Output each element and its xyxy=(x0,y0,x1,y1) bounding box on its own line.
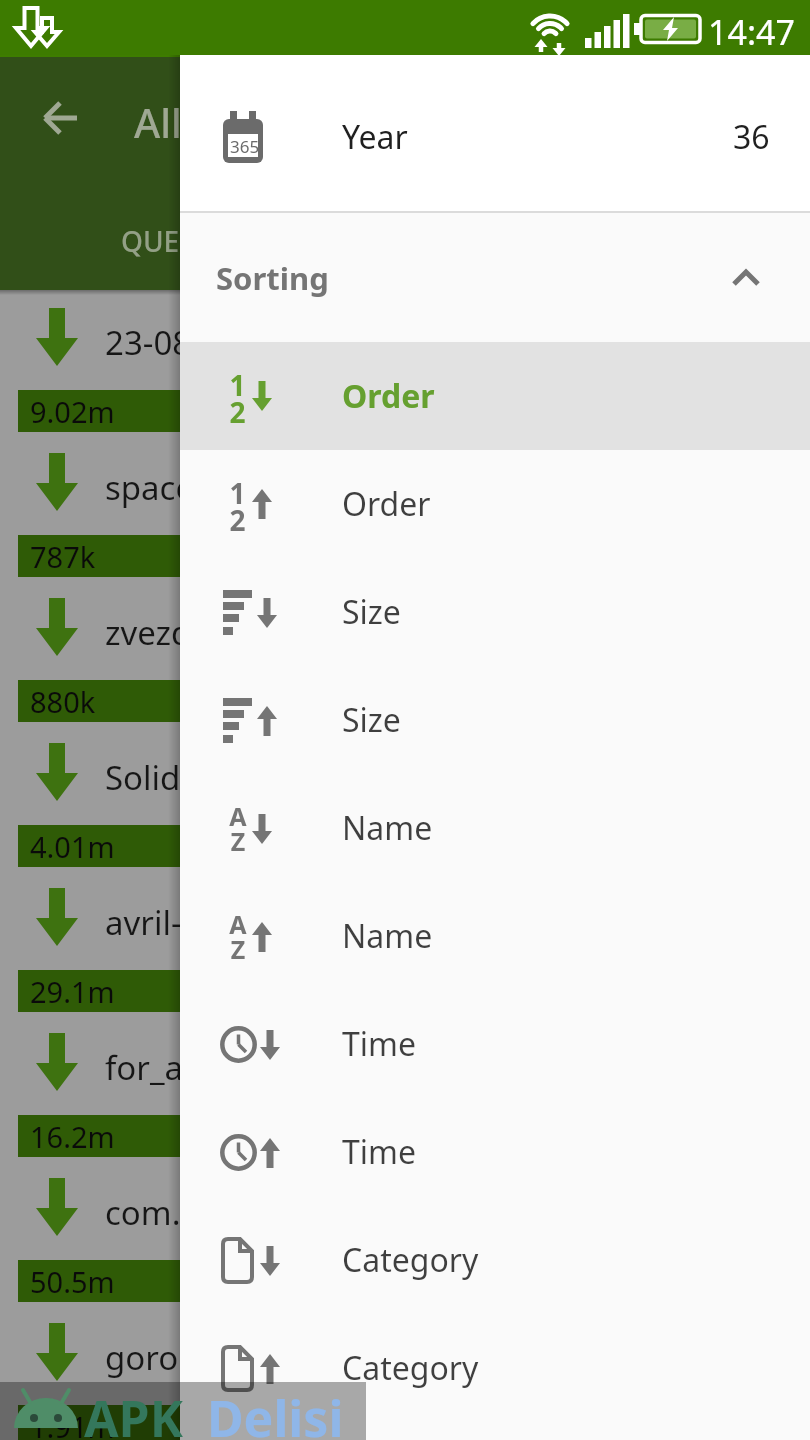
button[interactable]: avril-l xyxy=(0,875,810,1020)
staticText: Size xyxy=(342,698,401,742)
staticText: for_an xyxy=(105,1045,204,1090)
button[interactable]: for_an xyxy=(0,1020,810,1165)
button[interactable]: Sorting xyxy=(180,213,810,342)
button[interactable]: 23-08 xyxy=(0,295,810,440)
staticText: 50.5m xyxy=(30,1262,115,1301)
button[interactable]: Time xyxy=(180,1098,810,1206)
staticText: Solid_ xyxy=(105,755,196,800)
staticText: 1.91m xyxy=(30,1407,115,1440)
staticText: Sorting xyxy=(216,257,329,299)
staticText: com.ap xyxy=(105,1190,220,1235)
button[interactable]: Time xyxy=(180,990,810,1098)
button[interactable]: zvezda xyxy=(0,585,810,730)
staticText: 4.01m xyxy=(30,827,115,866)
button[interactable]: spaced xyxy=(0,440,810,585)
button[interactable]: Size xyxy=(180,558,810,666)
staticText: Order xyxy=(342,374,435,418)
staticText: 787k xyxy=(30,537,96,576)
button[interactable]: Category xyxy=(180,1206,810,1314)
button[interactable]: 365 xyxy=(180,55,810,211)
staticText: Time xyxy=(342,1022,417,1066)
staticText: 880k xyxy=(30,682,96,721)
staticText: A Z xyxy=(229,799,247,858)
staticText: Size xyxy=(342,590,401,634)
button[interactable]: Solid_ xyxy=(0,730,810,875)
staticText: APK xyxy=(84,1384,183,1440)
staticText: 16.2m xyxy=(30,1117,115,1156)
staticText: 9.02m xyxy=(30,392,115,431)
button[interactable] xyxy=(28,85,94,151)
button[interactable]: 1 2 xyxy=(180,450,810,558)
staticText: 1 2 xyxy=(229,366,246,426)
staticText: 29.1m xyxy=(30,972,115,1011)
staticText: 36 xyxy=(733,115,770,159)
staticText: zvezda xyxy=(105,610,210,655)
staticText: Name xyxy=(342,806,433,850)
button[interactable]: gorod xyxy=(0,1310,810,1440)
button[interactable]: A Z xyxy=(180,774,810,882)
staticText: QUEUE xyxy=(121,222,216,260)
staticText: All downloads xyxy=(134,95,401,149)
staticText: 14:47 xyxy=(708,9,795,55)
staticText: Name xyxy=(342,914,433,958)
staticText: 23-08 xyxy=(105,320,192,365)
staticText: gorod xyxy=(105,1335,199,1380)
button[interactable]: Size xyxy=(180,666,810,774)
staticText: Time xyxy=(342,1130,417,1174)
staticText: Category xyxy=(342,1346,479,1390)
staticText: spaced xyxy=(105,465,215,510)
staticText: Year xyxy=(342,115,408,159)
button[interactable]: com.ap xyxy=(0,1165,810,1310)
button[interactable]: A Z xyxy=(180,882,810,990)
staticText: 365 xyxy=(230,135,260,158)
staticText: Category xyxy=(342,1238,479,1282)
button[interactable]: 1 2 xyxy=(180,342,810,450)
staticText: Delisi xyxy=(207,1384,344,1440)
staticText: 1 2 xyxy=(229,474,246,534)
button[interactable]: Category xyxy=(180,1314,810,1422)
staticText: Order xyxy=(342,482,431,526)
staticText: A Z xyxy=(229,907,247,966)
staticText: avril-l xyxy=(105,900,191,945)
